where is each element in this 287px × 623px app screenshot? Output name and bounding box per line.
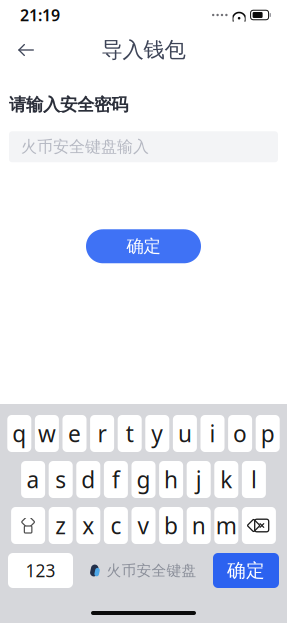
button[interactable]: t: [118, 415, 142, 452]
button[interactable]: 123: [8, 553, 73, 588]
staticText: d: [81, 464, 95, 494]
staticText: s: [55, 464, 66, 494]
button[interactable]: e: [62, 415, 86, 452]
staticText: i: [209, 418, 215, 448]
button[interactable]: n: [187, 507, 211, 544]
button[interactable]: Shift: [11, 507, 45, 544]
button[interactable]: z: [49, 507, 73, 544]
staticText: l: [251, 464, 257, 494]
staticText: u: [178, 418, 192, 448]
button[interactable]: 确定: [86, 229, 201, 263]
staticText: q: [12, 418, 26, 448]
staticText: c: [110, 510, 121, 540]
staticText: t: [126, 418, 134, 448]
button[interactable]: l: [242, 461, 266, 498]
staticText: r: [98, 418, 107, 448]
staticText: 21:19: [20, 4, 60, 26]
staticText: h: [164, 464, 178, 494]
button[interactable]: b: [159, 507, 183, 544]
button[interactable]: r: [90, 415, 114, 452]
button[interactable]: u: [173, 415, 197, 452]
button[interactable]: o: [228, 415, 252, 452]
staticText: a: [27, 464, 40, 494]
button[interactable]: k: [214, 461, 238, 498]
staticText: x: [82, 510, 94, 540]
staticText: 123: [25, 559, 55, 582]
staticText: n: [192, 510, 206, 540]
staticText: j: [196, 464, 202, 494]
staticText: 火币安全键盘: [106, 561, 196, 579]
button[interactable]: p: [256, 415, 280, 452]
staticText: w: [38, 418, 56, 448]
button[interactable]: i: [200, 415, 224, 452]
button[interactable]: 确定: [213, 553, 279, 588]
staticText: m: [216, 510, 237, 540]
staticText: 确定: [227, 559, 265, 582]
staticText: p: [261, 418, 275, 448]
staticText: 确定: [126, 236, 160, 257]
button[interactable]: h: [159, 461, 183, 498]
staticText: o: [233, 418, 247, 448]
button[interactable]: g: [131, 461, 155, 498]
button[interactable]: q: [7, 415, 31, 452]
button[interactable]: m: [214, 507, 238, 544]
staticText: 导入钱包: [101, 37, 185, 63]
staticText: 火币安全键盘输入: [21, 137, 149, 157]
button[interactable]: y: [145, 415, 169, 452]
button[interactable]: c: [104, 507, 128, 544]
staticText: b: [164, 510, 178, 540]
button[interactable]: d: [76, 461, 100, 498]
button[interactable]: w: [35, 415, 59, 452]
staticText: g: [136, 464, 150, 494]
button[interactable]: f: [104, 461, 128, 498]
button[interactable]: a: [21, 461, 45, 498]
staticText: 请输入安全密码: [9, 94, 128, 115]
button[interactable]: s: [49, 461, 73, 498]
button[interactable]: j: [187, 461, 211, 498]
staticText: v: [137, 510, 149, 540]
staticText: f: [112, 464, 120, 494]
staticText: z: [55, 510, 66, 540]
button[interactable]: Delete: [242, 507, 276, 544]
button[interactable]: x: [76, 507, 100, 544]
button[interactable]: 返回: [8, 32, 44, 68]
button[interactable]: 火币安全键盘输入: [9, 131, 278, 162]
staticText: k: [220, 464, 232, 494]
staticText: y: [151, 418, 163, 448]
staticText: e: [68, 418, 81, 448]
button[interactable]: v: [131, 507, 155, 544]
